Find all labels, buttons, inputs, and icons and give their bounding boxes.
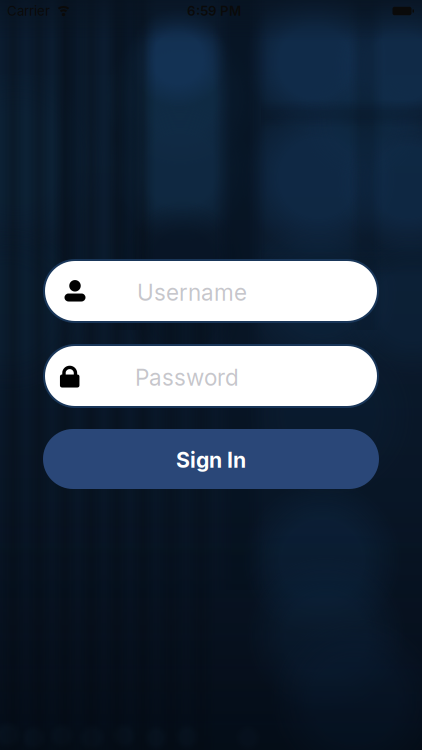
button[interactable]: Password — [43, 344, 379, 408]
staticText: 6:59 PM — [187, 3, 241, 19]
staticText: Password — [135, 364, 239, 391]
button[interactable]: Sign In — [43, 429, 379, 489]
staticText: Username — [137, 279, 247, 306]
button[interactable]: Username — [43, 259, 379, 323]
staticText: Sign In — [176, 447, 246, 473]
staticText: Carrier — [7, 3, 50, 19]
